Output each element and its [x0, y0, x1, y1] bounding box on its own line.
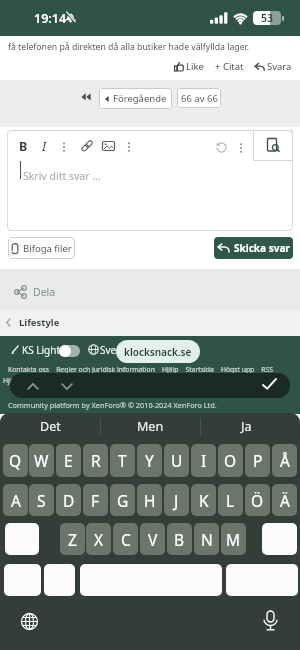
staticText: Ö [251, 490, 264, 511]
staticText: 19:14 [34, 10, 67, 27]
staticText: D [63, 490, 75, 511]
button[interactable]: Y [137, 444, 162, 477]
button[interactable]: Dela [14, 285, 56, 299]
button[interactable] [262, 523, 297, 555]
button[interactable]: klocksnack.se [116, 340, 200, 363]
staticText: V [148, 529, 158, 550]
button[interactable]: P [245, 444, 270, 477]
button[interactable] [4, 564, 41, 596]
button[interactable] [263, 610, 278, 632]
button[interactable]: B [15, 138, 31, 154]
staticText: Å [280, 450, 290, 471]
button[interactable]: Ja [200, 414, 293, 438]
button[interactable]: K [191, 484, 216, 516]
staticText: C [121, 529, 131, 550]
button[interactable] [253, 130, 293, 161]
button[interactable]: Svara [254, 60, 292, 73]
button[interactable]: W [29, 444, 54, 477]
button[interactable]: C [113, 523, 138, 555]
button[interactable] [5, 523, 39, 555]
staticText: J [174, 490, 179, 511]
button[interactable]: Men [100, 414, 200, 438]
button[interactable]: Å [272, 444, 297, 477]
button[interactable]: T [110, 444, 135, 477]
button[interactable]: L [218, 484, 243, 516]
staticText: Y [145, 450, 154, 471]
button[interactable]: R [83, 444, 108, 477]
button[interactable] [80, 564, 222, 596]
button[interactable]: Like [174, 60, 204, 73]
button[interactable]: N [194, 523, 219, 555]
staticText: Like [186, 60, 204, 73]
staticText: Det [40, 418, 61, 435]
staticText: klocksnack.se [124, 345, 192, 359]
staticText: 53 [261, 11, 274, 25]
staticText: X [94, 529, 104, 550]
staticText: S [37, 490, 46, 511]
button[interactable] [81, 93, 91, 101]
button[interactable] [62, 141, 66, 153]
button[interactable]: Bifoga filer [8, 237, 75, 259]
staticText: N [201, 529, 213, 550]
button[interactable]: S [29, 484, 54, 516]
button[interactable] [102, 141, 115, 151]
staticText: Skicka svar [234, 241, 290, 255]
staticText: I [201, 450, 207, 471]
staticText: Kontakta oss Regler och juridisk informa… [8, 365, 274, 374]
staticText: F [91, 490, 100, 511]
button[interactable] [215, 141, 228, 154]
button[interactable] [262, 378, 277, 390]
staticText: Lifestyle [19, 316, 60, 329]
button[interactable]: X [86, 523, 111, 555]
button[interactable] [226, 564, 298, 596]
button[interactable] [44, 564, 75, 596]
staticText: 66 av 66 [181, 92, 218, 105]
staticText: få telefonen på direkten då alla butiker… [8, 41, 250, 53]
button[interactable]: U [164, 444, 189, 477]
button[interactable]: Z [60, 523, 85, 555]
button[interactable] [127, 141, 131, 153]
button[interactable]: I [36, 138, 52, 154]
button[interactable]: Ö [245, 484, 270, 516]
button[interactable] [20, 612, 39, 631]
staticText: Hjälp [3, 376, 20, 385]
button[interactable]: G [110, 484, 135, 516]
staticText: Ä [280, 490, 290, 511]
staticText: M [226, 529, 241, 550]
button[interactable]: I [191, 444, 216, 477]
button[interactable]: + Citat [215, 60, 244, 73]
button[interactable]: 66 av 66 [177, 88, 221, 108]
staticText: Community platform by XenForo® © 2010-20… [8, 400, 217, 410]
button[interactable] [239, 142, 243, 154]
button[interactable]: H [137, 484, 162, 516]
button[interactable]: Skicka svar [214, 237, 293, 259]
button[interactable] [27, 383, 39, 390]
button[interactable]: V [140, 523, 165, 555]
button[interactable]: Det [0, 414, 100, 438]
staticText: Föregående [113, 92, 167, 105]
staticText: A [11, 490, 21, 511]
button[interactable]: J [164, 484, 189, 516]
button[interactable]: F [83, 484, 108, 516]
staticText: Ja [241, 418, 252, 435]
staticText: Sve [100, 343, 117, 357]
button[interactable]: O [218, 444, 243, 477]
button[interactable] [61, 383, 73, 390]
button[interactable] [80, 140, 94, 152]
staticText: Dela [33, 285, 56, 299]
button[interactable]: B [167, 523, 192, 555]
button[interactable]: Q [3, 444, 28, 477]
staticText: E [64, 450, 73, 471]
button[interactable]: Ä [272, 484, 297, 516]
staticText: W [34, 450, 49, 471]
button[interactable]: E [56, 444, 81, 477]
button[interactable]: A [3, 484, 28, 516]
button[interactable]: Lifestyle [6, 316, 60, 329]
button[interactable]: Föregående [99, 88, 172, 109]
staticText: Q [9, 450, 22, 471]
staticText: R [91, 450, 101, 471]
button[interactable] [59, 345, 80, 357]
staticText: K [199, 490, 209, 511]
button[interactable]: M [221, 523, 246, 555]
button[interactable]: D [56, 484, 81, 516]
